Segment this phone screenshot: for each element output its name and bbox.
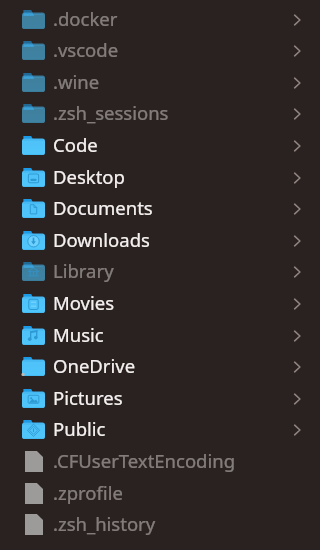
button[interactable]: .docker xyxy=(0,4,320,36)
button[interactable]: Downloads xyxy=(0,225,320,257)
staticText: Music xyxy=(53,322,104,347)
staticText: Library xyxy=(53,258,114,283)
button[interactable]: Open Movies xyxy=(288,294,308,314)
staticText: .CFUserTextEncoding xyxy=(53,448,236,473)
button[interactable]: Library xyxy=(0,256,320,288)
button[interactable]: .vscode xyxy=(0,35,320,67)
staticText: Documents xyxy=(53,195,153,220)
button[interactable]: Open .docker xyxy=(288,10,308,30)
button[interactable]: Public xyxy=(0,414,320,446)
button[interactable]: .zprofile xyxy=(0,478,320,510)
button[interactable]: .zsh_history xyxy=(0,509,320,541)
staticText: Desktop xyxy=(53,164,125,189)
button[interactable]: Open .zsh_sessions xyxy=(288,104,308,124)
staticText: .vscode xyxy=(53,37,119,62)
button[interactable]: .CFUserTextEncoding xyxy=(0,446,320,478)
button[interactable]: Open Music xyxy=(288,326,308,346)
staticText: Code xyxy=(53,132,98,157)
staticText: .wine xyxy=(53,69,100,94)
staticText: .zsh_sessions xyxy=(53,100,169,125)
staticText: Pictures xyxy=(53,385,123,410)
button[interactable]: Movies xyxy=(0,288,320,320)
staticText: OneDrive xyxy=(53,353,136,378)
button[interactable]: Music xyxy=(0,320,320,352)
button[interactable]: .zsh_sessions xyxy=(0,98,320,130)
staticText: .docker xyxy=(53,6,118,31)
button[interactable]: Code xyxy=(0,130,320,162)
button[interactable]: Open .vscode xyxy=(288,41,308,61)
button[interactable]: Open Documents xyxy=(288,199,308,219)
staticText: Downloads xyxy=(53,227,150,252)
button[interactable]: Open OneDrive xyxy=(288,357,308,377)
staticText: .zsh_history xyxy=(53,511,156,536)
button[interactable]: Pictures xyxy=(0,383,320,415)
button[interactable]: OneDrive xyxy=(0,351,320,383)
button[interactable]: .wine xyxy=(0,67,320,99)
button[interactable]: Desktop xyxy=(0,162,320,194)
button[interactable]: Open Pictures xyxy=(288,389,308,409)
button[interactable]: Open Public xyxy=(288,420,308,440)
button[interactable]: Open Desktop xyxy=(288,168,308,188)
button[interactable]: Documents xyxy=(0,193,320,225)
button[interactable]: Open Downloads xyxy=(288,231,308,251)
button[interactable]: Open Library xyxy=(288,262,308,282)
staticText: .zprofile xyxy=(53,480,123,505)
staticText: Public xyxy=(53,416,106,441)
button[interactable]: Open .wine xyxy=(288,73,308,93)
staticText: Movies xyxy=(53,290,115,315)
button[interactable]: Open Code xyxy=(288,136,308,156)
